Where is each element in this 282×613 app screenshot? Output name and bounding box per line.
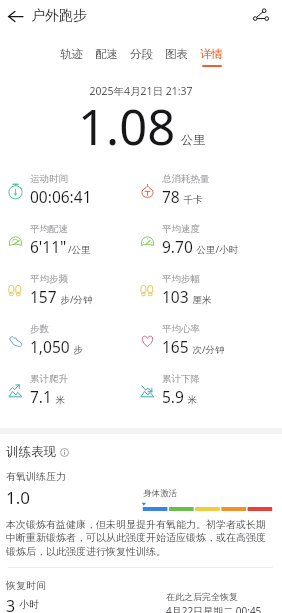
staticText: 有氧训练压力 [6,470,66,483]
staticText: 1.08 [78,93,176,160]
staticText: 103 [162,286,189,307]
staticText: 总消耗热量 [162,173,210,185]
staticText: 公里/小时 [194,243,239,256]
staticText: 图表 [165,47,188,61]
staticText: 配速 [95,47,118,61]
staticText: 次/分钟 [190,343,225,356]
button[interactable]: Share [249,4,273,28]
staticText: 步数 [30,323,49,335]
button[interactable]: 轨迹 [54,46,89,68]
staticText: 78 [162,186,180,207]
staticText: 平均步幅 [162,273,200,285]
staticText: 3 [6,595,16,613]
staticText: 米 [185,393,197,406]
staticText: 轨迹 [60,47,83,61]
staticText: 训练表现 [6,444,56,460]
staticText: 165 [162,336,189,357]
staticText: 千卡 [181,193,203,206]
staticText: 6'11" [30,236,67,257]
staticText: 平均速度 [162,223,200,235]
staticText: 1.0 [6,486,31,509]
staticText: 分段 [130,47,153,61]
button[interactable]: 分段 [124,46,159,68]
staticText: 米 [53,393,65,406]
button[interactable]: 图表 [159,46,194,68]
staticText: 厘米 [190,293,212,306]
staticText: 平均步频 [30,273,68,285]
staticText: 9.70 [162,236,193,257]
staticText: /公里 [68,243,91,256]
staticText: 在此之后完全恢复 [166,591,238,602]
staticText: 恢复时间 [6,579,46,592]
staticText: 户外跑步 [31,7,87,25]
staticText: 运动时间 [30,173,68,185]
staticText: 本次锻炼有益健康，但未明显提升有氧能力。初学者或长期中断重新锻炼者，可以从此强度… [6,518,275,558]
staticText: 平均心率 [162,323,200,335]
staticText: 身体激活 [143,488,177,499]
staticText: 累计下降 [162,373,200,385]
staticText: 详情 [200,47,223,61]
staticText: 00:06:41 [30,186,92,207]
staticText: 1,050 [30,336,70,357]
staticText: 公里 [181,132,205,147]
staticText: 步/分钟 [58,293,93,306]
staticText: 小时 [19,598,39,611]
staticText: 5.9 [162,386,184,407]
staticText: 7.1 [30,386,52,407]
staticText: 157 [30,286,57,307]
staticText: 步 [71,343,83,356]
staticText: 累计爬升 [30,373,68,385]
staticText: 4月22日星期二 00:45 [166,604,262,613]
button[interactable]: 配速 [89,46,124,68]
button[interactable]: Back [1,2,29,30]
staticText: 平均配速 [30,223,68,235]
staticText: 2025年4月21日 21:37 [0,84,282,98]
button[interactable]: 详情 [194,46,229,68]
